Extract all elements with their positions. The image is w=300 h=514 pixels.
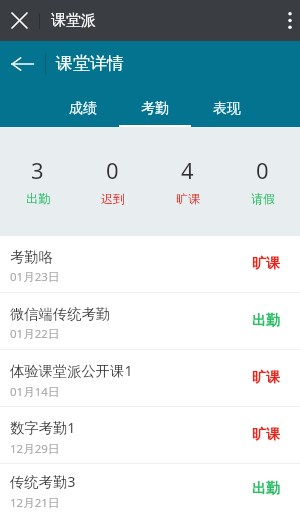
staticText: 考勤 bbox=[141, 100, 169, 118]
button[interactable]: 微信端传统考勤 bbox=[0, 293, 300, 350]
staticText: 4 bbox=[181, 155, 194, 185]
staticText: 12月29日 bbox=[10, 441, 60, 457]
staticText: 0 bbox=[256, 155, 269, 185]
button[interactable]: 考勤咯 bbox=[0, 236, 300, 293]
staticText: 表现 bbox=[213, 100, 241, 118]
staticText: 旷课 bbox=[176, 191, 200, 206]
staticText: 12月21日 bbox=[10, 495, 60, 511]
staticText: 出勤 bbox=[26, 191, 50, 206]
staticText: 迟到 bbox=[101, 191, 125, 206]
staticText: 01月14日 bbox=[10, 384, 60, 400]
staticText: 出勤 bbox=[252, 312, 280, 330]
staticText: 数字考勤1 bbox=[10, 418, 76, 438]
button[interactable]: Close bbox=[0, 0, 39, 41]
button[interactable]: 传统考勤3 bbox=[0, 464, 300, 514]
button[interactable]: 体验课堂派公开课1 bbox=[0, 350, 300, 407]
staticText: 旷课 bbox=[252, 369, 280, 387]
button[interactable]: 表现 bbox=[191, 86, 263, 127]
staticText: 传统考勤3 bbox=[10, 472, 76, 492]
staticText: 01月22日 bbox=[10, 326, 60, 342]
button[interactable]: 成绩 bbox=[47, 86, 119, 127]
staticText: 3 bbox=[31, 155, 44, 185]
staticText: 微信端传统考勤 bbox=[10, 305, 111, 323]
button[interactable]: 数字考勤1 bbox=[0, 407, 300, 464]
button[interactable]: More options bbox=[279, 0, 300, 41]
staticText: 请假 bbox=[251, 191, 275, 206]
staticText: 01月23日 bbox=[10, 269, 60, 285]
staticText: 考勤咯 bbox=[10, 248, 53, 266]
staticText: 成绩 bbox=[69, 100, 97, 118]
staticText: 出勤 bbox=[252, 480, 280, 498]
button[interactable]: Back bbox=[0, 41, 45, 86]
staticText: 旷课 bbox=[252, 426, 280, 444]
button[interactable]: 考勤 bbox=[119, 86, 191, 127]
staticText: 旷课 bbox=[252, 255, 280, 273]
staticText: 课堂派 bbox=[51, 11, 96, 30]
staticText: 0 bbox=[106, 155, 119, 185]
staticText: 体验课堂派公开课1 bbox=[10, 361, 133, 381]
staticText: 课堂详情 bbox=[56, 53, 124, 74]
